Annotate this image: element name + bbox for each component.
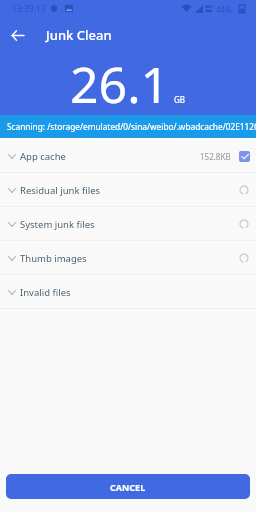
button[interactable]: Thumb images bbox=[0, 241, 256, 275]
staticText: Junk Clean bbox=[46, 26, 112, 44]
button[interactable]: Residual junk files bbox=[0, 173, 256, 207]
staticText: 44% bbox=[216, 4, 232, 15]
staticText: Residual junk files bbox=[20, 184, 101, 197]
staticText: 152.8KB bbox=[200, 151, 231, 162]
staticText: Invalid files bbox=[20, 286, 71, 299]
staticText: 13:39:13 bbox=[12, 3, 46, 15]
staticText: 26.1 bbox=[70, 50, 170, 118]
staticText: GB bbox=[174, 94, 186, 105]
button[interactable]: CANCEL bbox=[6, 474, 250, 499]
staticText: App cache bbox=[20, 150, 66, 163]
button[interactable]: Selected bbox=[239, 151, 250, 162]
button[interactable]: Invalid files bbox=[0, 275, 256, 309]
button[interactable]: App cache bbox=[0, 139, 256, 173]
staticText: CANCEL bbox=[110, 481, 146, 493]
staticText: System junk files bbox=[20, 218, 95, 231]
button[interactable]: System junk files bbox=[0, 207, 256, 241]
button[interactable]: Back bbox=[0, 22, 34, 48]
staticText: Thumb images bbox=[20, 252, 87, 265]
staticText: Scanning: /storage/emulated/0/sina/weibo… bbox=[7, 121, 256, 132]
